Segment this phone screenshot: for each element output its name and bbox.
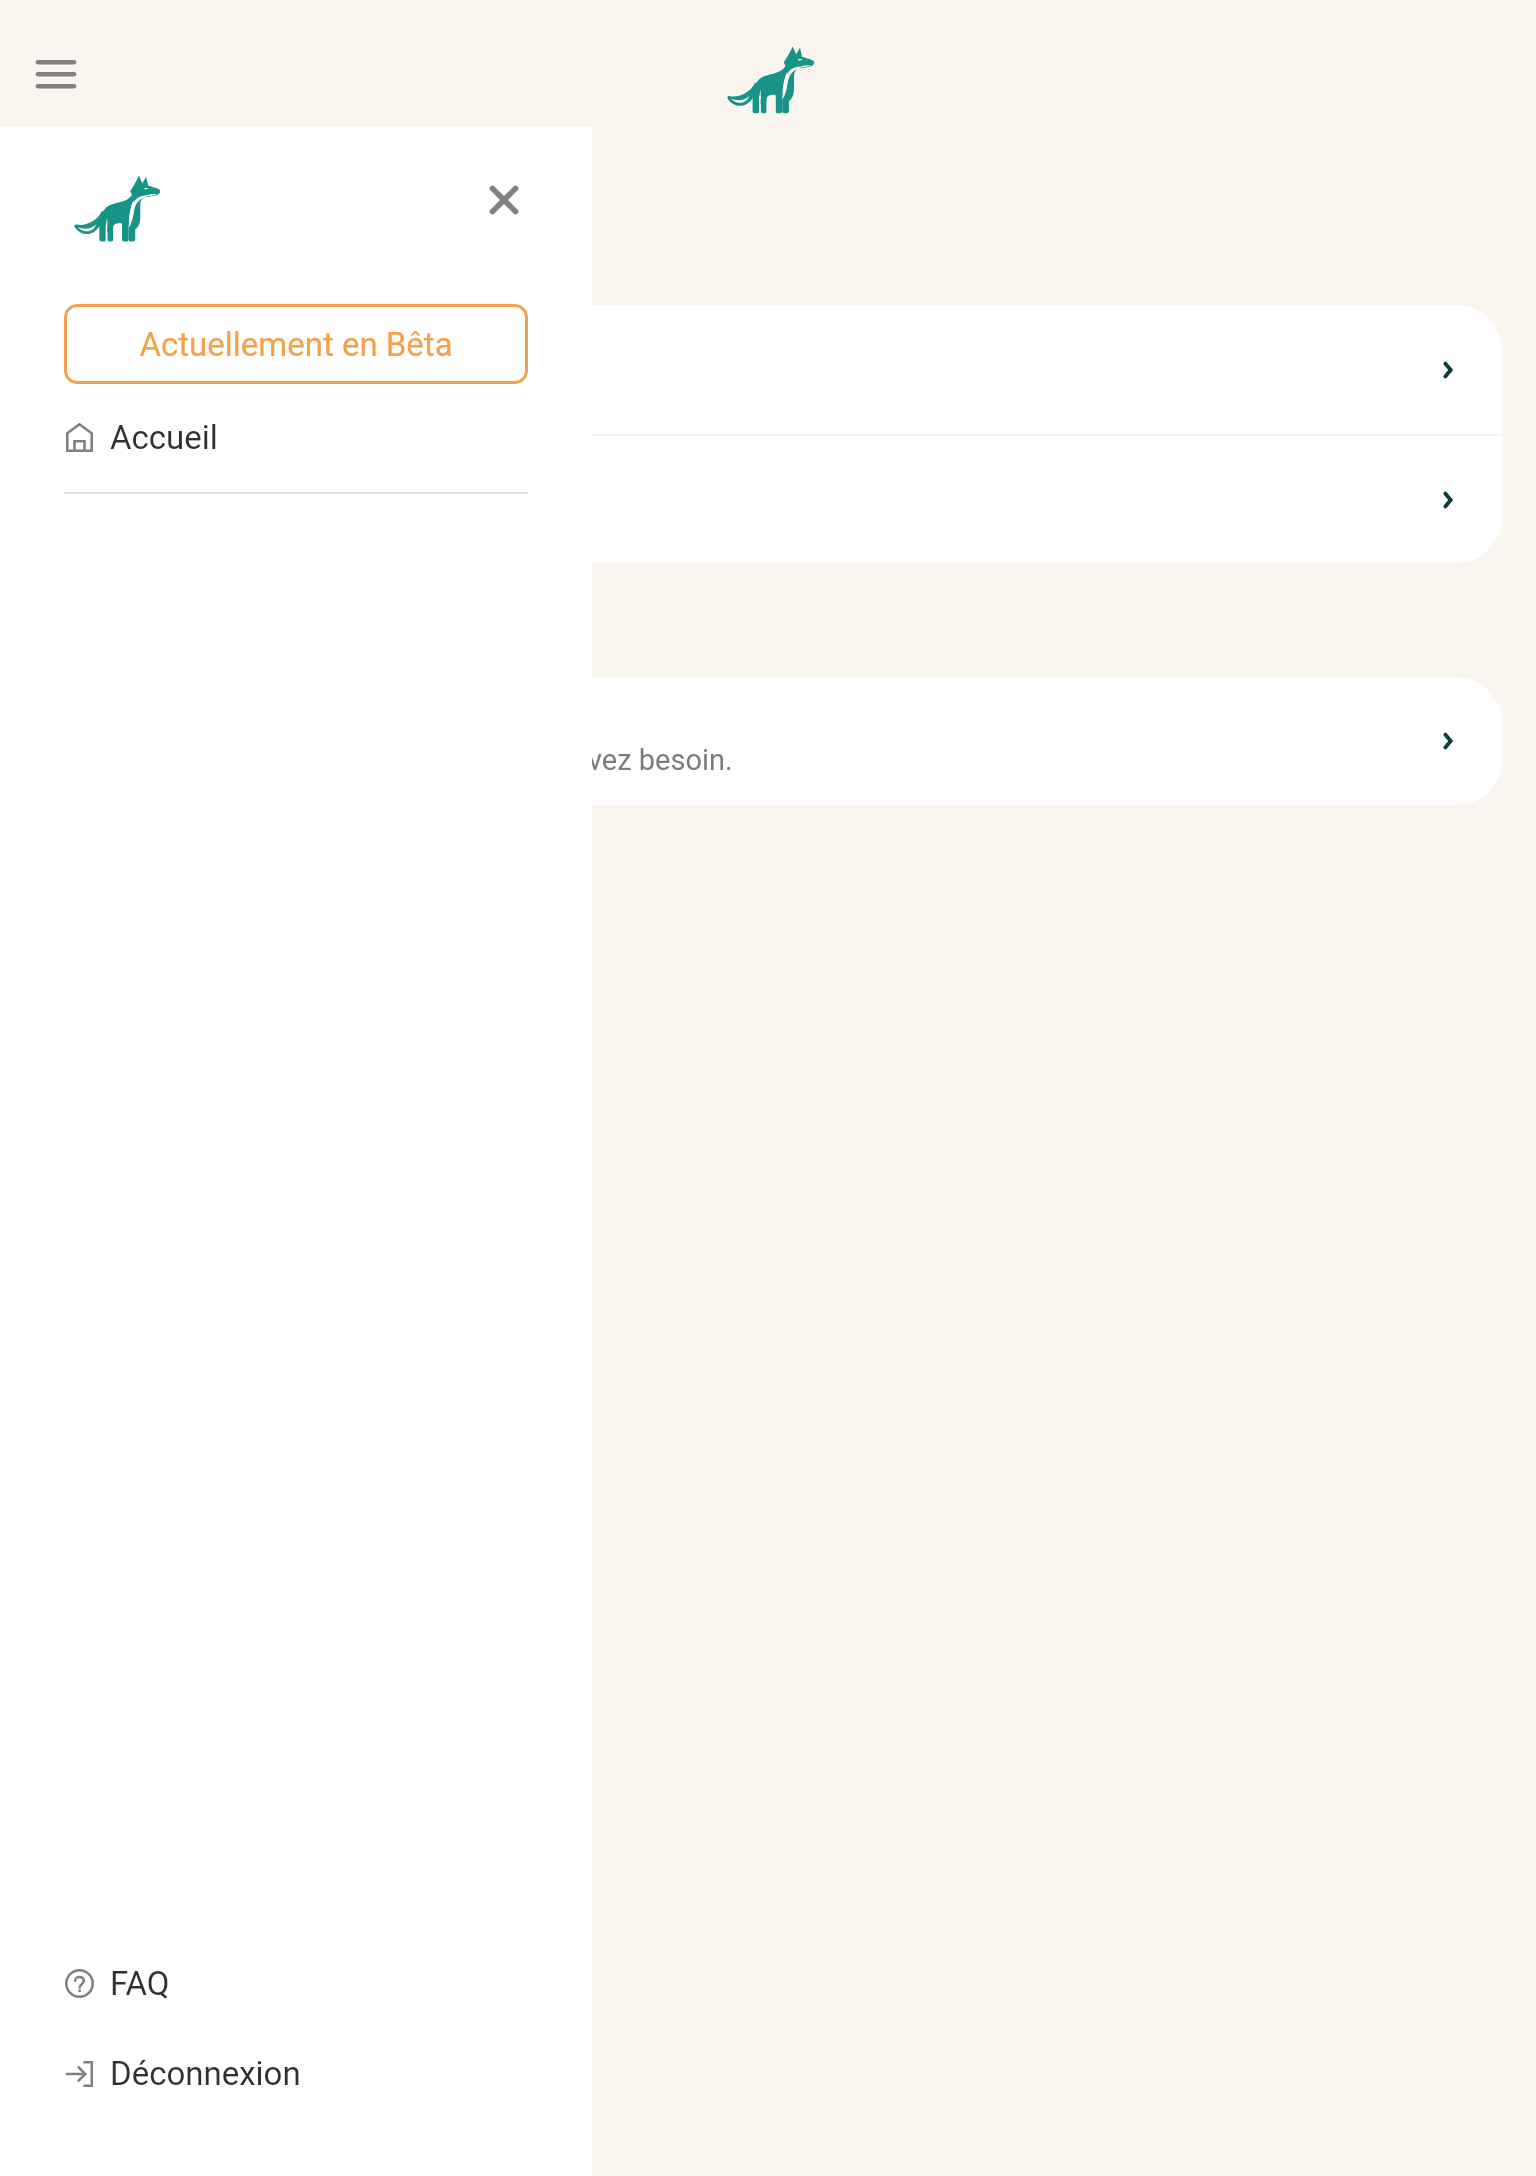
staticText: Mes rendez-vous xyxy=(82,465,317,501)
button[interactable]: Découvrez nos services, nos conseils et … xyxy=(34,677,1502,805)
button[interactable]: FAQ xyxy=(0,1947,592,2019)
staticText: Actuellement en Bêta xyxy=(139,325,453,364)
button[interactable]: Actuellement en Bêta xyxy=(64,304,528,384)
button[interactable]: Déconnexion xyxy=(0,2037,592,2109)
button[interactable]: Menu xyxy=(16,34,96,114)
staticText: FAQ xyxy=(110,1964,170,2003)
button[interactable]: Accueil xyxy=(0,401,592,473)
staticText: Découvrez nos services, nos conseils et … xyxy=(82,698,733,777)
button[interactable]: Close drawer xyxy=(466,162,542,238)
button[interactable]: Mes rendez-vous xyxy=(34,436,1502,563)
staticText: Carnet de santé xyxy=(82,371,286,405)
staticText: Mes animaux xyxy=(82,335,268,371)
staticText: Déconnexion xyxy=(110,2054,301,2093)
staticText: Accueil xyxy=(110,418,218,457)
button[interactable]: Mes animaux xyxy=(34,305,1502,434)
